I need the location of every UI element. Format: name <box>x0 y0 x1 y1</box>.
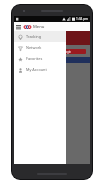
button[interactable]: My Account <box>14 64 66 75</box>
staticText: Menu <box>33 24 45 30</box>
button[interactable]: Favorites <box>14 53 66 64</box>
staticText: 1:34 pm <box>76 17 89 21</box>
staticText: Login <box>64 50 71 54</box>
button[interactable]: Open navigation drawer <box>14 22 23 31</box>
button[interactable]: Tracking <box>14 31 66 42</box>
staticText: My Account <box>26 67 47 72</box>
staticText: Tracking <box>26 34 42 39</box>
button[interactable]: Network <box>14 42 66 53</box>
button[interactable]: Login <box>48 49 86 54</box>
button[interactable] <box>44 57 90 63</box>
staticText: Network <box>26 45 42 50</box>
staticText: Favorites <box>26 56 43 61</box>
